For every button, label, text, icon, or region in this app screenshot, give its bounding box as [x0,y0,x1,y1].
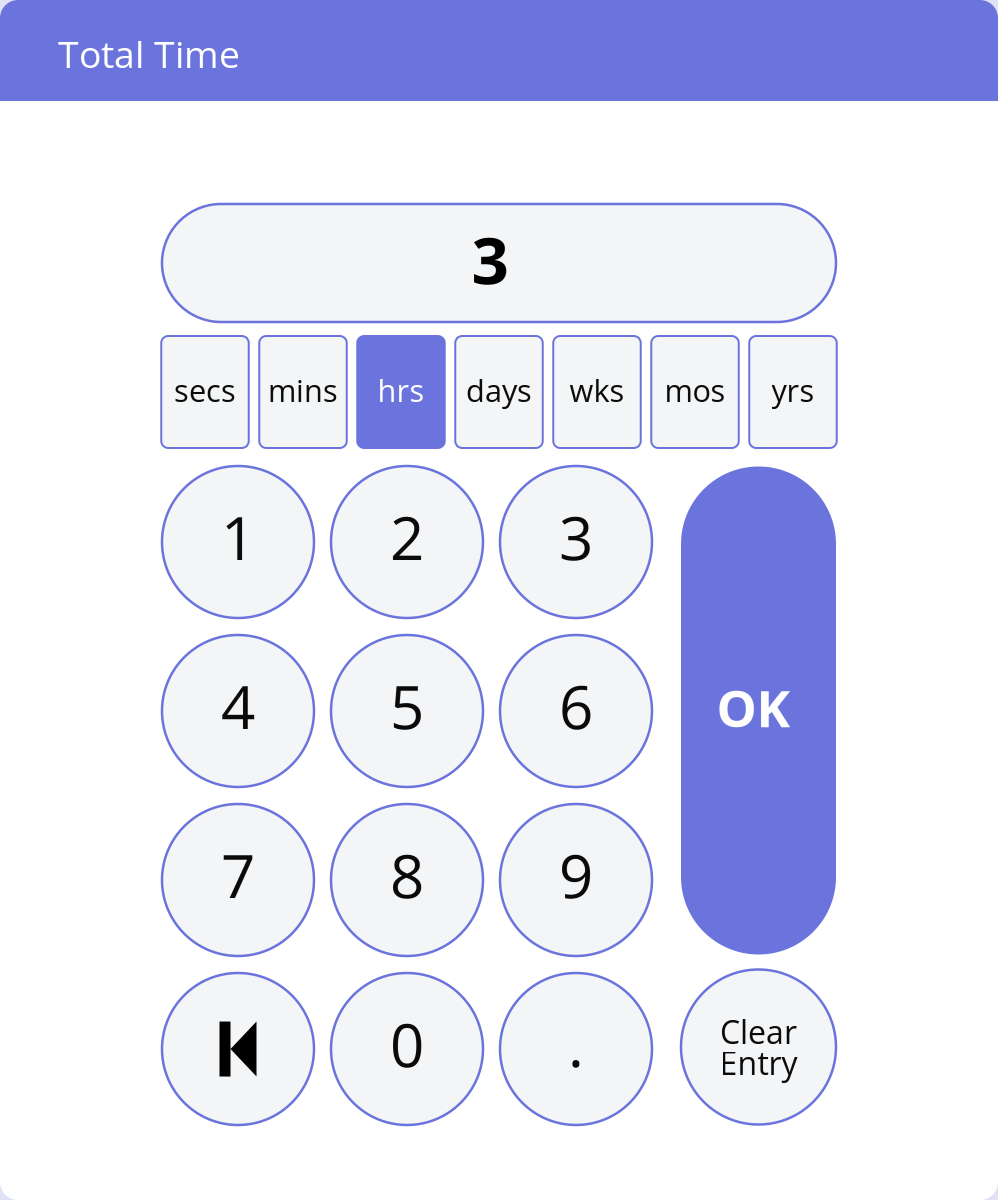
button[interactable]: 3 [500,466,652,618]
staticText: 8 [390,834,424,916]
staticText: Total Time [58,28,240,79]
button[interactable]: mos [651,336,739,448]
staticText: hrs [377,369,424,411]
staticText: 3 [559,496,593,578]
staticText: mins [268,369,338,411]
staticText: wks [569,369,624,411]
button[interactable]: 6 [500,635,652,787]
button[interactable]: 5 [331,635,483,787]
button[interactable]: mins [259,336,347,448]
button[interactable]: days [455,336,543,448]
button[interactable]: 8 [331,804,483,956]
button[interactable]: 9 [500,804,652,956]
button[interactable]: 2 [331,466,483,618]
staticText: 5 [390,665,424,747]
button[interactable]: Clear [681,969,836,1124]
staticText: secs [174,369,236,411]
staticText: 7 [221,834,255,916]
button[interactable]: 4 [162,635,314,787]
staticText: days [466,369,532,411]
button[interactable]: 1 [162,466,314,618]
staticText: Clear [720,1010,797,1053]
staticText: 4 [221,665,255,747]
button[interactable]: Backspace [162,973,314,1125]
staticText: 3 [471,214,508,303]
staticText: 6 [559,665,593,747]
button[interactable]: wks [553,336,641,448]
button[interactable]: 0 [331,973,483,1125]
button[interactable]: 7 [162,804,314,956]
staticText: mos [664,369,725,411]
staticText: yrs [771,369,814,411]
staticText: . [568,1003,584,1085]
staticText: 1 [221,496,255,578]
staticText: Entry [719,1041,797,1084]
button[interactable]: . [500,973,652,1125]
staticText: 2 [390,496,424,578]
button[interactable]: secs [161,336,249,448]
button[interactable]: OK [681,466,836,954]
button[interactable]: hrs [357,336,445,448]
staticText: 9 [559,834,593,916]
button[interactable]: yrs [749,336,837,448]
staticText: 0 [390,1003,424,1085]
staticText: OK [716,673,790,742]
